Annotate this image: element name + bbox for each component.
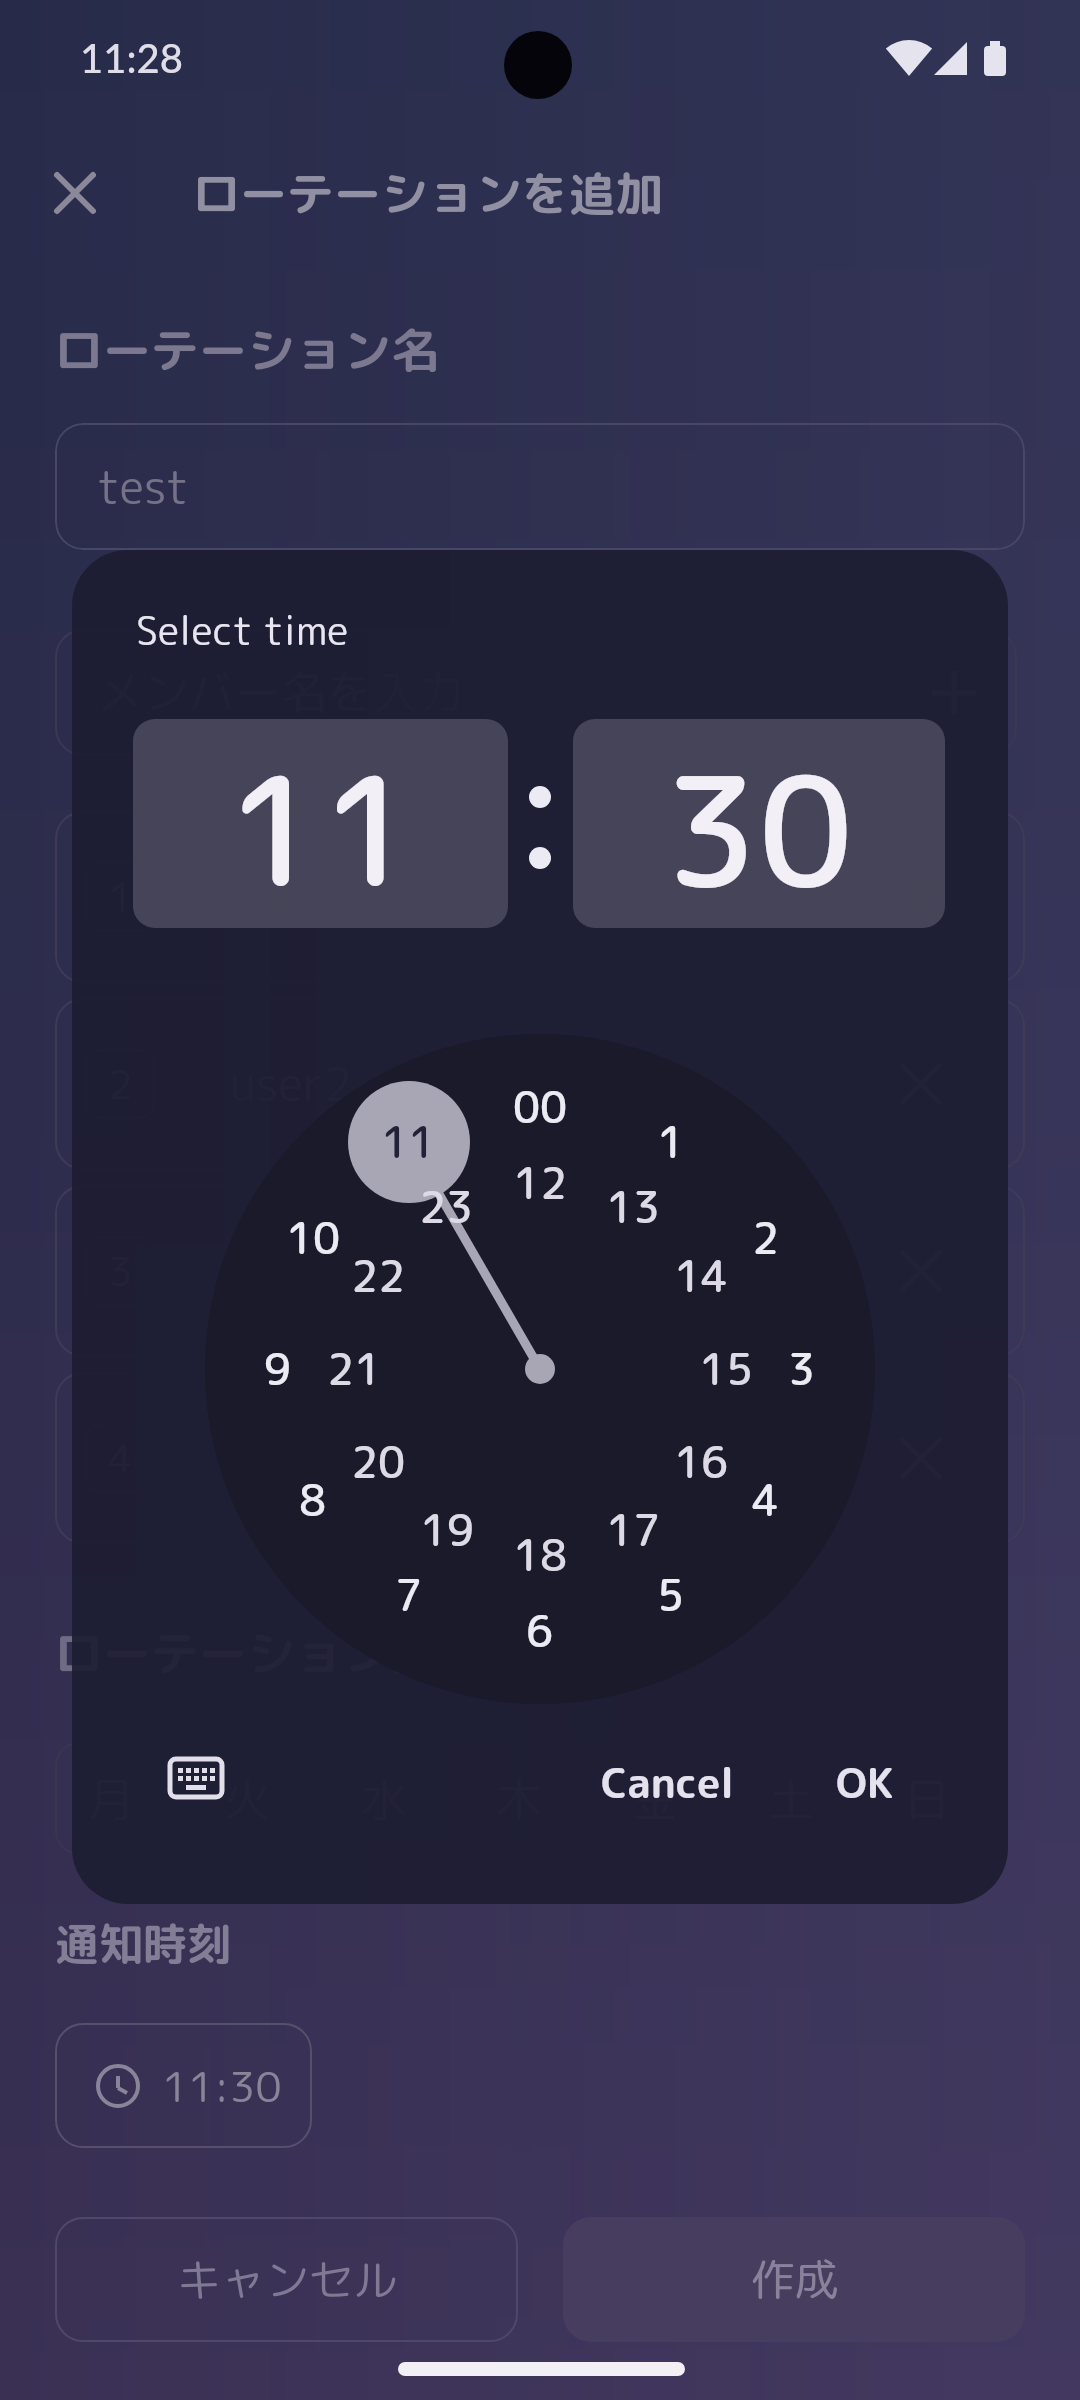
- staticText: 15: [699, 1339, 754, 1399]
- staticText: 17: [606, 1500, 661, 1560]
- staticText: OK: [836, 1753, 894, 1803]
- button[interactable]: [133, 719, 508, 928]
- staticText: 9: [264, 1339, 292, 1399]
- staticText: 18: [513, 1525, 568, 1585]
- staticText: Select time: [136, 602, 349, 658]
- staticText: 火: [224, 1767, 270, 1831]
- staticText: 23: [419, 1177, 474, 1237]
- staticText: 7: [395, 1565, 423, 1625]
- staticText: test: [97, 455, 189, 519]
- button[interactable]: [563, 2217, 1025, 2342]
- staticText: ローテーション名: [55, 316, 440, 383]
- staticText: 5: [657, 1565, 685, 1625]
- button[interactable]: [55, 423, 1025, 550]
- staticText: 20: [351, 1432, 406, 1492]
- staticText: user4: [230, 1426, 352, 1490]
- button[interactable]: [191, 1742, 303, 1855]
- staticText: 21: [327, 1339, 382, 1399]
- staticText: 作成: [750, 2249, 838, 2310]
- staticText: 30: [664, 725, 854, 934]
- staticText: 10: [286, 1208, 341, 1268]
- staticText: 13: [606, 1177, 661, 1237]
- staticText: 11:28: [80, 34, 183, 82]
- staticText: 2: [752, 1208, 780, 1268]
- button[interactable]: OK: [820, 1753, 910, 1803]
- staticText: 金: [632, 1767, 678, 1831]
- button[interactable]: [735, 1742, 847, 1855]
- staticText: メンバー名を入力: [97, 660, 465, 724]
- staticText: 3: [788, 1339, 816, 1399]
- staticText: 00: [513, 1077, 568, 1137]
- staticText: 14: [674, 1246, 729, 1306]
- button[interactable]: [55, 2023, 312, 2148]
- staticText: 12: [513, 1153, 568, 1213]
- staticText: user3: [230, 1239, 352, 1303]
- staticText: キャンセル: [177, 2249, 397, 2310]
- staticText: 22: [351, 1246, 406, 1306]
- staticText: Cancel: [601, 1753, 735, 1803]
- staticText: 11: [226, 725, 416, 934]
- button[interactable]: [170, 1759, 222, 1797]
- button[interactable]: [890, 629, 1017, 756]
- staticText: 8: [299, 1470, 327, 1530]
- staticText: 11: [381, 1112, 436, 1172]
- staticText: 1: [657, 1112, 685, 1172]
- staticText: ローテーションを追加: [193, 160, 663, 224]
- button[interactable]: Cancel: [580, 1753, 755, 1803]
- staticText: 6: [526, 1601, 554, 1661]
- button[interactable]: [599, 1742, 711, 1855]
- button[interactable]: [573, 719, 945, 928]
- staticText: 4: [752, 1470, 780, 1530]
- staticText: 16: [674, 1432, 729, 1492]
- button[interactable]: [45, 163, 105, 223]
- button[interactable]: [871, 1742, 983, 1855]
- button[interactable]: [55, 1742, 167, 1855]
- staticText: 通知時刻: [55, 1913, 231, 1974]
- button[interactable]: [891, 867, 951, 927]
- staticText: user1: [230, 865, 352, 929]
- staticText: ローテーション曜日: [55, 1619, 488, 1686]
- staticText: 11:30: [162, 2057, 282, 2116]
- staticText: 19: [420, 1500, 475, 1560]
- button[interactable]: [55, 2217, 518, 2342]
